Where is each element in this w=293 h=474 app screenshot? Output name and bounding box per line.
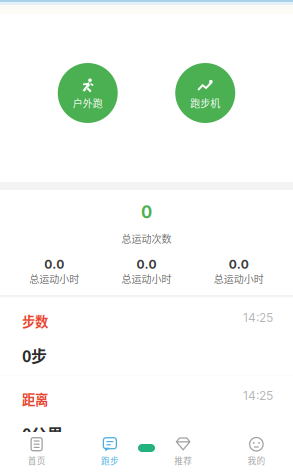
staticText: 总运动次数 xyxy=(121,231,171,246)
button[interactable]: 跑步机 xyxy=(175,63,235,123)
staticText: 0.0 xyxy=(44,257,64,271)
staticText: 0.0 xyxy=(229,257,249,271)
button[interactable]: 我的 xyxy=(220,430,293,474)
staticText: 总运动小时 xyxy=(214,271,264,286)
staticText: 0步 xyxy=(22,344,47,367)
button[interactable]: 步数 xyxy=(0,297,293,382)
staticText: 0 xyxy=(141,202,152,222)
staticText: 14:25 xyxy=(243,310,273,325)
button[interactable]: 开始运动 xyxy=(132,438,161,458)
staticText: 步数 xyxy=(22,311,48,331)
staticText: 总运动小时 xyxy=(29,271,79,286)
button[interactable]: 跑步 xyxy=(73,430,146,474)
button[interactable]: 首页 xyxy=(0,430,73,474)
button[interactable]: 距离 xyxy=(0,375,293,460)
staticText: 距离 xyxy=(22,389,48,409)
staticText: 14:25 xyxy=(243,388,273,403)
staticText: 跑步机 xyxy=(190,96,220,110)
staticText: 总运动小时 xyxy=(121,271,171,286)
staticText: 首页 xyxy=(28,454,46,467)
staticText: 户外跑 xyxy=(73,96,103,110)
button[interactable]: 户外跑 xyxy=(58,63,118,123)
staticText: 0公里 xyxy=(22,422,63,445)
button[interactable]: 推荐 xyxy=(146,430,220,474)
staticText: 跑步 xyxy=(101,454,119,467)
staticText: 0.0 xyxy=(136,257,156,271)
staticText: 推荐 xyxy=(174,454,192,467)
staticText: 我的 xyxy=(247,454,265,467)
